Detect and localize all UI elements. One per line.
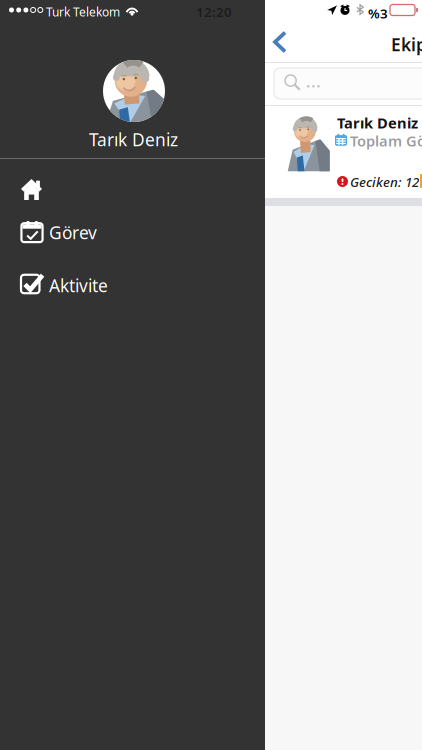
staticText: Aktivite xyxy=(49,274,108,297)
button[interactable]: Tarık Deniz xyxy=(265,106,422,198)
staticText: %3 xyxy=(368,4,388,22)
staticText: Tarık Deniz xyxy=(337,113,418,132)
staticText: Geciken: 12 xyxy=(350,173,419,191)
staticText: Tarık Deniz xyxy=(89,128,178,151)
staticText: Ekip Görev Listesi xyxy=(391,33,422,56)
staticText: Toplam Görev: 48 xyxy=(350,131,422,150)
staticText: 12:20 xyxy=(196,3,232,21)
staticText: Turk Telekom xyxy=(46,4,120,20)
staticText: Görev xyxy=(49,221,97,244)
button[interactable]: Ana Sayfa xyxy=(0,170,265,210)
button[interactable]: Geri xyxy=(265,21,317,63)
button[interactable]: Görev xyxy=(0,212,265,252)
button[interactable]: Aktivite xyxy=(0,264,265,304)
